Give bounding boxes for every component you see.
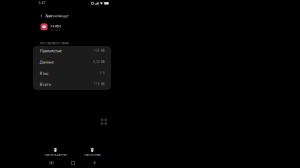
button[interactable]: Очистить данные	[36, 145, 75, 159]
staticText: 110 МБ	[94, 82, 105, 86]
button[interactable]: Очистить кэш	[73, 145, 112, 159]
staticText: 0 Б	[100, 71, 105, 75]
button[interactable]: Home	[66, 158, 80, 167]
staticText: Кэш	[40, 70, 49, 76]
staticText: Камера	[50, 24, 61, 28]
staticText: Данные	[40, 59, 54, 65]
staticText: Использование памяти	[40, 41, 69, 45]
staticText: Приложение	[40, 48, 62, 53]
staticText: Всего	[40, 81, 51, 87]
staticText: Очистить данные	[44, 153, 66, 157]
button[interactable]: Back	[87, 158, 101, 167]
staticText: 3:07	[39, 1, 46, 5]
staticText: ‹	[41, 12, 43, 19]
button[interactable]: Recents	[44, 158, 58, 167]
button[interactable]: Back	[38, 10, 46, 20]
staticText: 13.1.02.3	[50, 28, 59, 31]
staticText: Хранилище	[45, 13, 68, 18]
staticText: 4,34 МБ	[93, 60, 105, 64]
staticText: Очистить кэш	[84, 153, 100, 157]
staticText: 106 МБ	[94, 49, 105, 53]
